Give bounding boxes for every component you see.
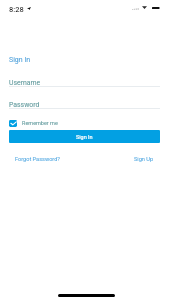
staticText: 8:28: [9, 5, 24, 14]
staticText: Username: [9, 79, 41, 87]
other: Location: [27, 7, 31, 10]
staticText: Password: [9, 101, 40, 109]
staticText: Sign In: [76, 134, 93, 140]
button[interactable]: Remember me: [9, 118, 58, 128]
button[interactable]: Sign In: [9, 56, 31, 64]
other: Cellular signal: [132, 8, 139, 10]
button[interactable]: Sign In: [9, 130, 160, 143]
other: Battery: [152, 7, 160, 9]
other: Wi-Fi: [142, 6, 147, 9]
button[interactable]: Forgot Password?: [15, 156, 60, 163]
button[interactable]: Sign Up: [134, 156, 154, 163]
staticText: Remember me: [22, 120, 58, 126]
